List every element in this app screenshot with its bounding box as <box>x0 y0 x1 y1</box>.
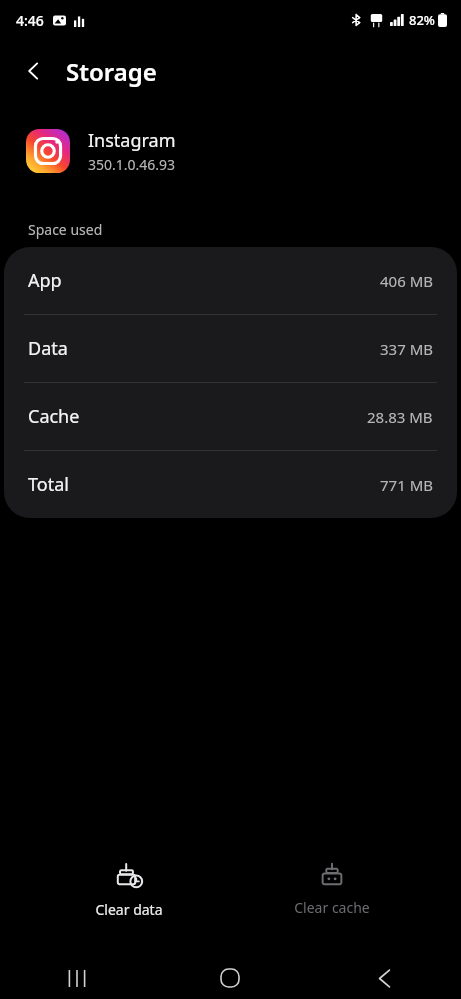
button[interactable]: Clear data <box>54 855 204 927</box>
button[interactable]: Back <box>14 51 54 91</box>
staticText: 82% <box>409 11 435 29</box>
staticText: Storage <box>66 55 157 88</box>
button[interactable]: Cache <box>4 383 457 450</box>
staticText: Data <box>28 336 68 361</box>
staticText: Clear cache <box>294 898 370 917</box>
button[interactable]: Total <box>4 451 457 518</box>
button[interactable]: Clear cache <box>257 855 407 925</box>
staticText: 406 MB <box>380 271 433 291</box>
staticText: Space used <box>28 220 103 239</box>
staticText: 28.83 MB <box>367 407 433 427</box>
staticText: Total <box>28 472 69 497</box>
button[interactable]: App <box>4 247 457 314</box>
staticText: 4:46 <box>16 11 44 30</box>
button[interactable]: Back <box>307 957 461 999</box>
staticText: 337 MB <box>380 339 433 359</box>
button[interactable]: Recents <box>0 957 153 999</box>
staticText: 771 MB <box>380 475 433 495</box>
button[interactable]: Home <box>153 957 307 999</box>
staticText: 350.1.0.46.93 <box>88 155 176 174</box>
staticText: Instagram <box>88 128 176 153</box>
staticText: Cache <box>28 404 80 429</box>
staticText: Clear data <box>95 900 163 919</box>
button[interactable]: Data <box>4 315 457 382</box>
staticText: App <box>28 268 62 293</box>
